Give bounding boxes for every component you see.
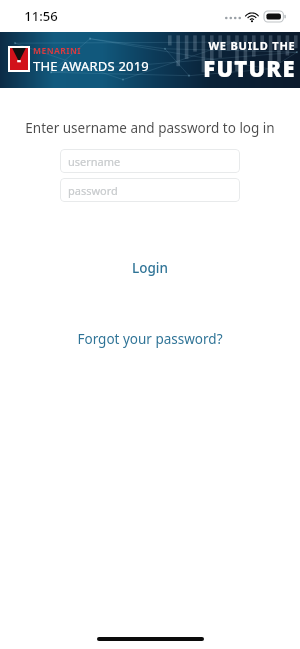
staticText: WE BUILD THE xyxy=(208,38,296,53)
staticText: Forgot your password? xyxy=(77,330,223,348)
staticText: MENARINI xyxy=(33,45,81,57)
button[interactable]: username xyxy=(60,149,240,173)
staticText: Enter username and password to log in xyxy=(0,119,300,137)
staticText: Login xyxy=(132,259,168,277)
button[interactable]: password xyxy=(60,178,240,202)
staticText: THE AWARDS 2019 xyxy=(33,57,149,75)
button[interactable]: Login xyxy=(0,259,300,277)
staticText: password xyxy=(68,183,118,198)
button[interactable]: Forgot your password? xyxy=(0,330,300,348)
staticText: username xyxy=(68,154,121,169)
staticText: 11:56 xyxy=(24,7,58,25)
staticText: FUTURE xyxy=(203,53,296,83)
